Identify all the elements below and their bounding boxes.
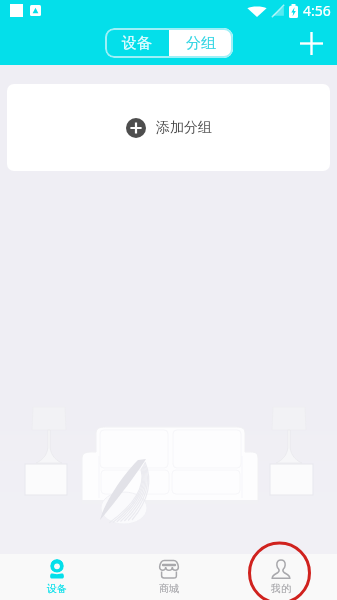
staticText: 商城 — [159, 582, 179, 595]
staticText: 设备 — [122, 34, 152, 53]
button[interactable]: 商城 — [113, 554, 225, 600]
button[interactable]: 我的 — [225, 554, 337, 600]
button[interactable]: 分组 — [169, 28, 233, 58]
button[interactable]: 添加分组 — [7, 84, 330, 171]
staticText: 我的 — [271, 582, 291, 595]
staticText: 4:56 — [303, 1, 331, 20]
button[interactable]: 设备 — [105, 28, 169, 58]
button[interactable]: Add — [293, 25, 329, 61]
button[interactable]: 设备 — [0, 554, 113, 600]
staticText: 添加分组 — [156, 119, 212, 137]
staticText: 分组 — [186, 34, 216, 53]
staticText: 设备 — [47, 582, 67, 595]
